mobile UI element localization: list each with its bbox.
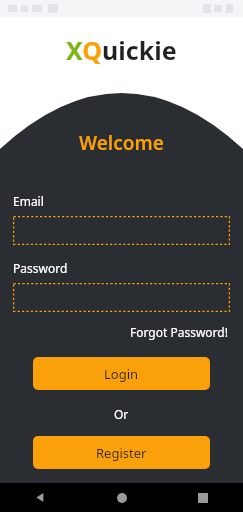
button[interactable]: Register: [33, 436, 210, 469]
staticText: Login: [104, 365, 139, 383]
staticText: Forgot Password!: [130, 324, 228, 340]
button[interactable]: Recent apps: [162, 483, 243, 512]
button[interactable]: Home: [81, 483, 162, 512]
staticText: XQuickie: [66, 33, 177, 67]
staticText: Email: [13, 193, 44, 209]
staticText: Or: [114, 406, 129, 422]
button[interactable]: Login: [33, 357, 210, 390]
button[interactable]: Back: [0, 483, 81, 512]
button[interactable]: Text field: [13, 216, 230, 245]
button[interactable]: Forgot Password!: [128, 322, 230, 342]
button[interactable]: Text field: [13, 283, 230, 312]
staticText: Password: [13, 260, 68, 276]
staticText: Welcome: [79, 130, 164, 156]
staticText: Register: [96, 444, 147, 462]
